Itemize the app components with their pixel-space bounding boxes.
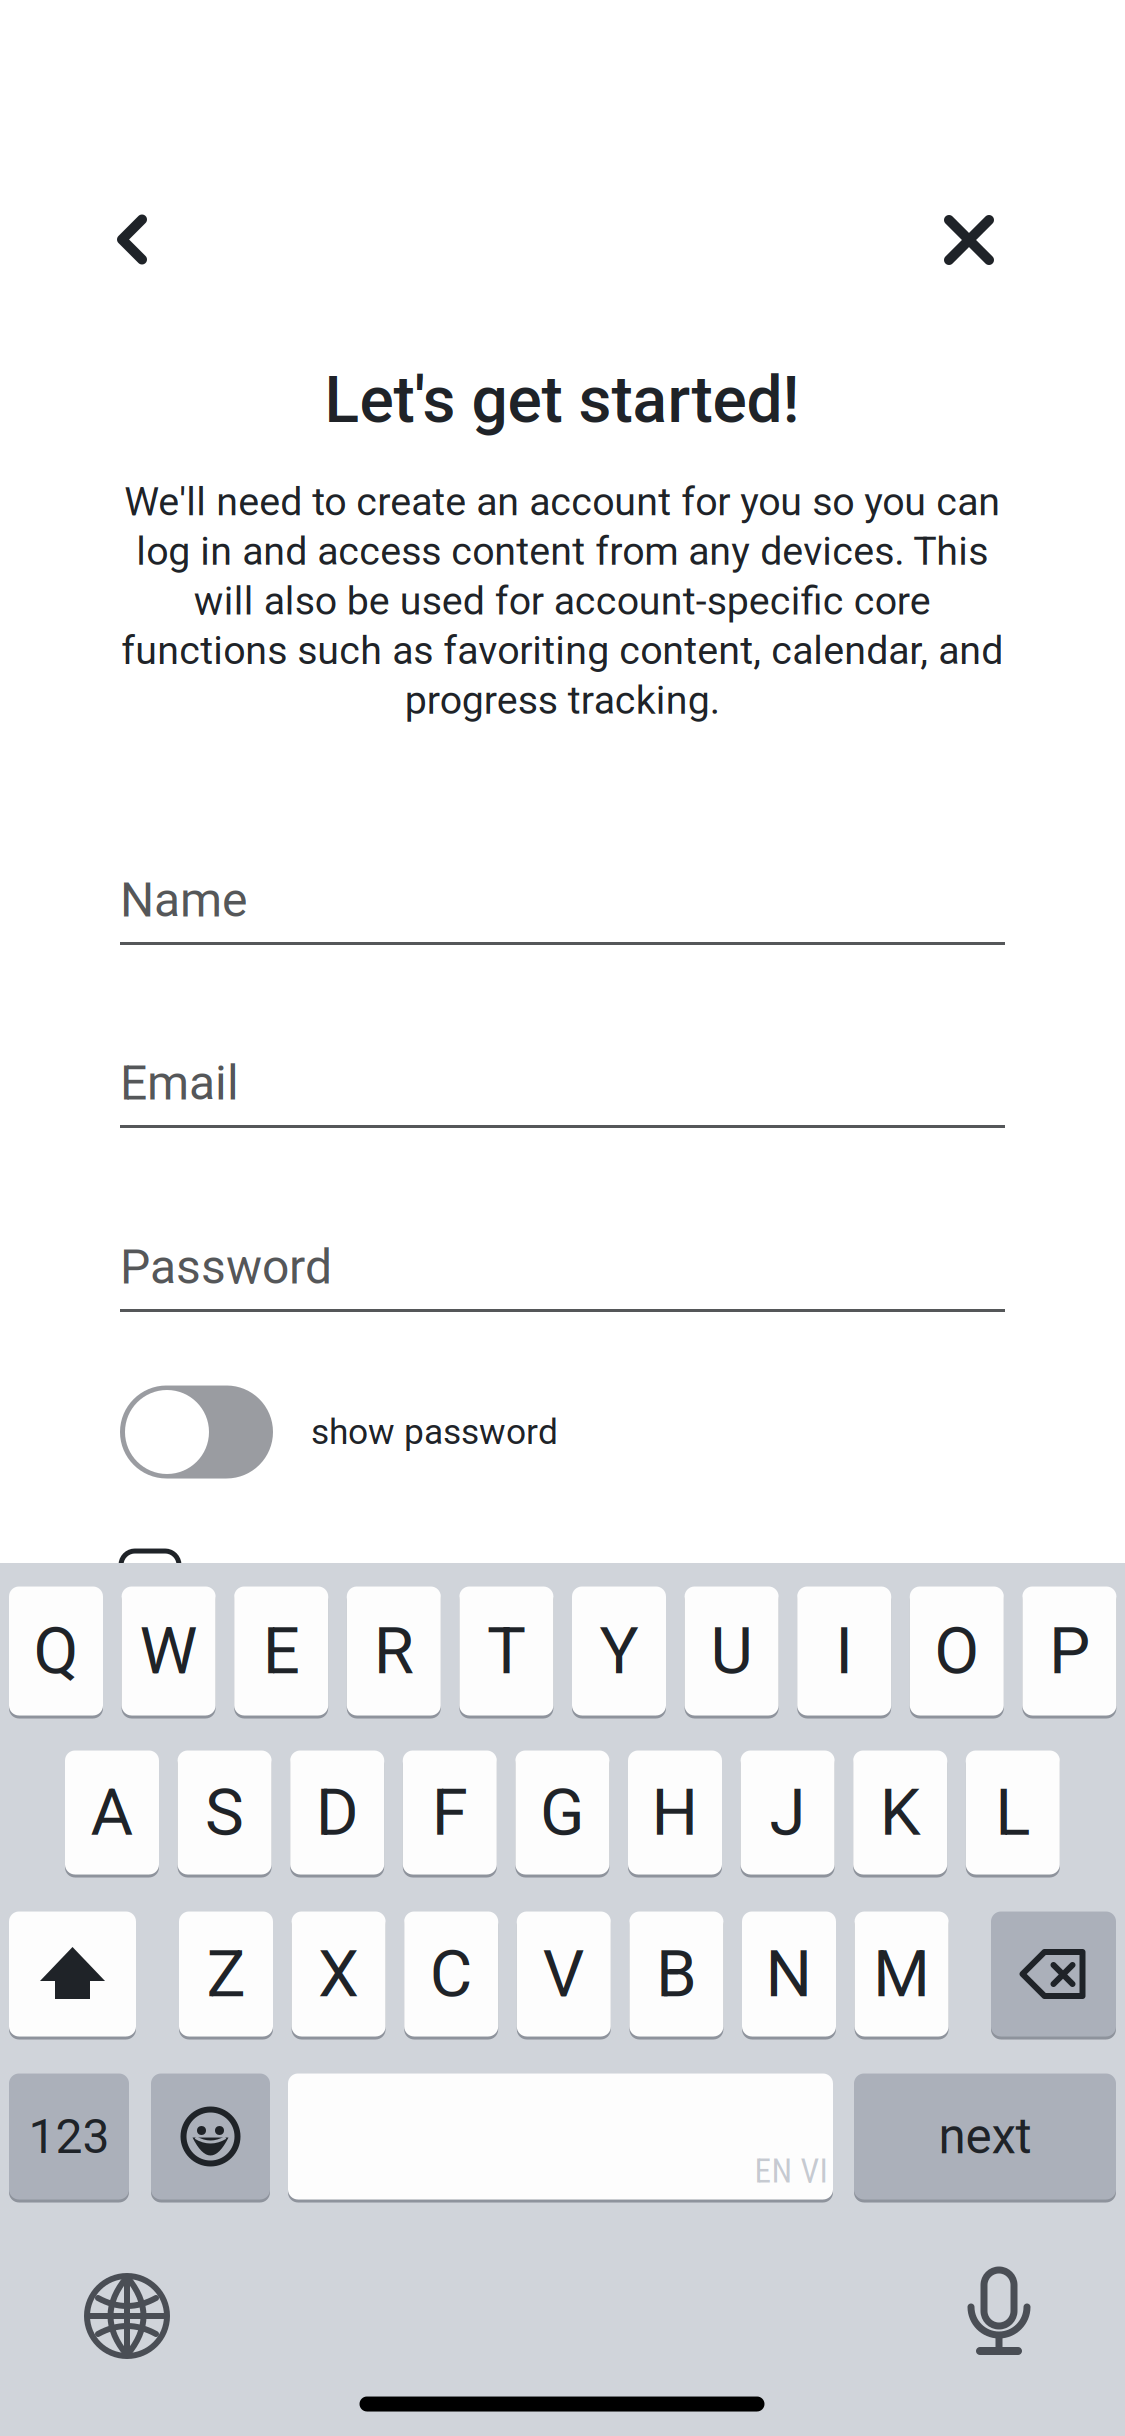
staticText: L [995,1774,1030,1851]
button[interactable]: Emoji [151,2072,270,2201]
button[interactable]: Shift [9,1910,136,2038]
staticText: Name [120,872,247,928]
button[interactable]: K [853,1749,947,1876]
staticText: G [540,1774,585,1851]
button[interactable]: Space [288,2072,833,2201]
staticText: show password [311,1411,558,1453]
button[interactable]: N [742,1910,836,2038]
button[interactable]: J [741,1749,835,1876]
staticText: Email [120,1055,239,1111]
button[interactable]: F [403,1749,497,1876]
button[interactable]: P [1022,1585,1116,1717]
staticText: U [711,1613,753,1689]
staticText: We'll need to create an account for you … [121,479,1003,723]
button[interactable]: Switch keyboard [79,2268,175,2364]
staticText: R [374,1613,414,1689]
button[interactable]: O [910,1585,1004,1717]
button[interactable]: X [292,1910,386,2038]
button[interactable]: Q [9,1585,103,1717]
button[interactable]: W [122,1585,216,1717]
button[interactable]: V [517,1910,611,2038]
staticText: O [934,1613,979,1689]
staticText: next [938,2108,1031,2165]
staticText: K [880,1774,921,1851]
button[interactable]: 123 [9,2072,129,2201]
button[interactable]: Name [120,884,1005,945]
staticText: F [432,1774,468,1851]
button[interactable]: S [178,1749,272,1876]
button[interactable]: R [347,1585,441,1717]
staticText: Y [599,1613,638,1689]
button[interactable]: Z [179,1910,273,2038]
button[interactable]: C [404,1910,498,2038]
button[interactable]: next [854,2072,1116,2201]
staticText: V [543,1936,585,2012]
staticText: N [765,1936,812,2012]
staticText: J [770,1774,806,1851]
staticText: EN VI [754,2151,827,2191]
staticText: E [263,1613,300,1689]
staticText: B [656,1936,697,2012]
staticText: I [835,1613,853,1689]
staticText: D [316,1774,359,1851]
staticText: Password [120,1239,332,1295]
staticText: S [205,1774,244,1851]
staticText: W [140,1613,198,1689]
staticText: M [873,1936,930,2012]
button[interactable]: show password [120,1385,640,1478]
button[interactable]: E [234,1585,328,1717]
staticText: H [651,1774,698,1851]
staticText: 123 [28,2108,109,2165]
button[interactable]: D [290,1749,384,1876]
button[interactable]: H [628,1749,722,1876]
staticText: A [90,1774,133,1851]
button[interactable]: A [65,1749,159,1876]
button[interactable]: M [855,1910,949,2038]
staticText: Z [206,1936,245,2012]
button[interactable]: Delete [991,1910,1116,2038]
button[interactable]: L [966,1749,1060,1876]
button[interactable]: Back [104,211,160,267]
staticText: P [1049,1613,1090,1689]
staticText: Q [33,1613,78,1689]
button[interactable]: Close [941,212,997,268]
staticText: X [318,1936,359,2012]
button[interactable]: G [515,1749,609,1876]
staticText: C [430,1936,473,2012]
staticText: Let's get started! [324,362,799,437]
button[interactable]: B [629,1910,723,2038]
button[interactable]: Password [120,1251,1005,1312]
button[interactable]: U [685,1585,779,1717]
button[interactable]: T [459,1585,553,1717]
button[interactable]: I [797,1585,891,1717]
staticText: T [487,1613,526,1689]
button[interactable]: Y [572,1585,666,1717]
button[interactable]: Dictation [959,2250,1039,2356]
button[interactable]: Email [120,1067,1005,1128]
